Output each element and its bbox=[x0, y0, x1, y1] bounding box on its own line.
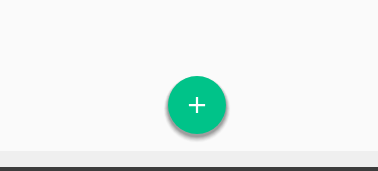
button[interactable]: Add bbox=[168, 76, 226, 134]
